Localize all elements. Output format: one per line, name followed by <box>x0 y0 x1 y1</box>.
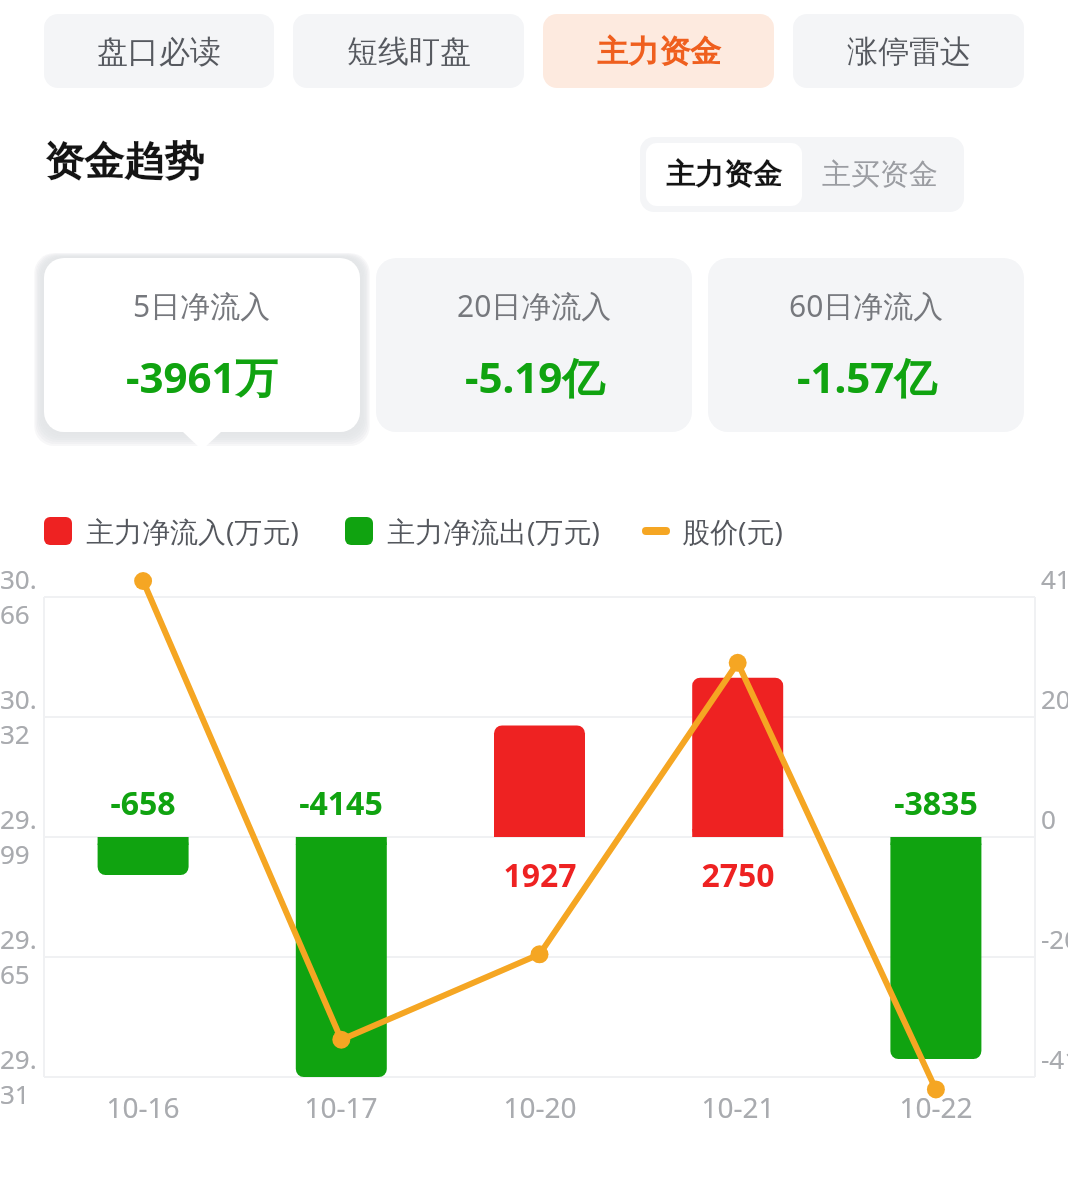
staticText: 20日净流入 <box>457 285 612 326</box>
staticText: 2750 <box>701 853 775 897</box>
button[interactable]: 20日净流入 <box>376 258 692 432</box>
staticText: -4145 <box>299 781 383 825</box>
button[interactable]: 主买资金 <box>802 143 958 206</box>
staticText: 29.31 <box>0 1041 40 1111</box>
button[interactable]: 60日净流入 <box>708 258 1024 432</box>
staticText: 0 <box>1041 801 1056 836</box>
staticText: 主力资金 <box>666 156 782 193</box>
staticText: 盘口必读 <box>97 32 221 71</box>
staticText: 10-22 <box>899 1088 973 1126</box>
staticText: 2073 <box>1041 681 1068 716</box>
staticText: -3961万 <box>126 348 278 405</box>
staticText: 10-17 <box>304 1088 378 1126</box>
staticText: 29.99 <box>0 801 40 871</box>
staticText: 30.32 <box>0 681 40 751</box>
staticText: 主力净流入(万元) <box>86 512 299 550</box>
staticText: 10-20 <box>503 1088 577 1126</box>
staticText: 主力资金 <box>597 32 721 71</box>
staticText: 主买资金 <box>822 156 938 193</box>
staticText: 10-16 <box>106 1088 180 1126</box>
staticText: -4145 <box>1041 1041 1068 1076</box>
staticText: -2072 <box>1041 921 1068 956</box>
staticText: 10-21 <box>701 1088 775 1126</box>
staticText: 涨停雷达 <box>847 32 971 71</box>
staticText: 5日净流入 <box>133 285 271 326</box>
button[interactable]: 盘口必读 <box>44 14 274 88</box>
staticText: -3835 <box>894 781 978 825</box>
staticText: 29.65 <box>0 921 40 991</box>
staticText: -658 <box>110 781 176 825</box>
button[interactable]: 5日净流入 <box>44 258 360 432</box>
staticText: 30.66 <box>0 561 40 631</box>
staticText: 短线盯盘 <box>347 32 471 71</box>
staticText: 1927 <box>503 853 577 897</box>
button[interactable]: 短线盯盘 <box>293 14 524 88</box>
staticText: 资金趋势 <box>44 136 204 186</box>
button[interactable]: 涨停雷达 <box>793 14 1024 88</box>
button[interactable]: 主力资金 <box>646 143 802 206</box>
button[interactable]: 主力资金 <box>543 14 774 88</box>
staticText: 60日净流入 <box>789 285 944 326</box>
staticText: 主力净流出(万元) <box>387 512 600 550</box>
staticText: -1.57亿 <box>797 348 937 405</box>
staticText: 4145 <box>1041 561 1068 596</box>
staticText: -5.19亿 <box>465 348 605 405</box>
staticText: 股价(元) <box>682 512 783 550</box>
